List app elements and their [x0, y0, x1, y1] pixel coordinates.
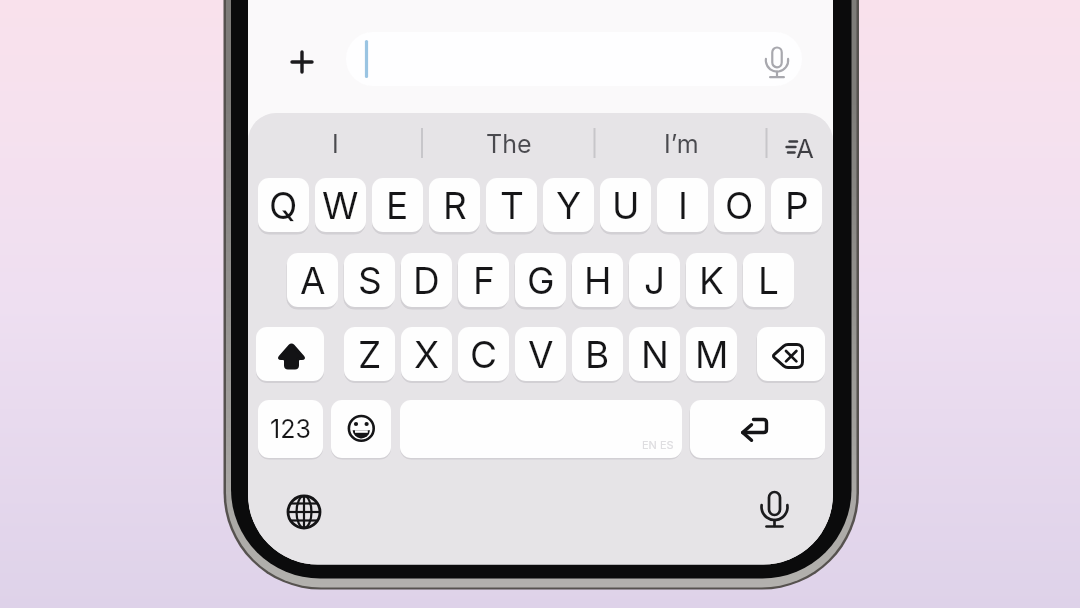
staticText: G [527, 258, 555, 303]
button[interactable]: B [572, 327, 623, 381]
staticText: M [695, 332, 729, 377]
button[interactable]: L [743, 253, 794, 307]
staticText: B [585, 332, 610, 377]
staticText: A [300, 258, 326, 303]
button[interactable] [690, 400, 825, 458]
button[interactable]: S [344, 253, 395, 307]
button[interactable] [278, 38, 326, 86]
staticText: S [358, 258, 382, 303]
button[interactable]: I [248, 113, 422, 175]
button[interactable]: O [714, 178, 765, 232]
staticText: U [612, 183, 640, 228]
staticText: W [322, 183, 359, 228]
button[interactable] [276, 486, 332, 538]
button[interactable]: X [401, 327, 452, 381]
staticText: C [470, 332, 498, 377]
staticText: K [699, 258, 724, 303]
staticText: R [443, 183, 467, 228]
staticText: D [413, 258, 440, 303]
button[interactable] [331, 400, 391, 458]
button[interactable] [346, 32, 802, 86]
button[interactable]: R [429, 178, 480, 232]
button[interactable] [757, 327, 825, 381]
button[interactable]: Q [258, 178, 309, 232]
staticText: I [332, 129, 339, 159]
staticText: O [725, 183, 754, 228]
button[interactable]: Y [543, 178, 594, 232]
button[interactable]: J [629, 253, 680, 307]
staticText: A [796, 133, 814, 161]
button[interactable]: E [372, 178, 423, 232]
staticText: L [758, 258, 779, 303]
staticText: T [500, 183, 524, 228]
staticText: I’m [664, 129, 699, 159]
button[interactable]: The [422, 113, 595, 175]
button[interactable]: T [486, 178, 537, 232]
button[interactable] [747, 486, 803, 538]
button[interactable]: W [315, 178, 366, 232]
button[interactable]: U [600, 178, 651, 232]
button[interactable]: P [771, 178, 822, 232]
staticText: H [584, 258, 612, 303]
button[interactable]: F [458, 253, 509, 307]
button[interactable]: I’m [595, 113, 767, 175]
button[interactable]: A [287, 253, 338, 307]
button[interactable]: C [458, 327, 509, 381]
staticText: The [486, 129, 532, 159]
button[interactable]: G [515, 253, 566, 307]
staticText: P [785, 183, 809, 228]
staticText: J [644, 258, 666, 303]
staticText: V [528, 332, 554, 377]
staticText: EN ES [642, 438, 674, 451]
button[interactable]: N [629, 327, 680, 381]
staticText: Z [358, 332, 382, 377]
staticText: I [678, 183, 688, 228]
staticText: X [414, 332, 440, 377]
button[interactable] [400, 400, 682, 458]
button[interactable]: I [657, 178, 708, 232]
staticText: F [473, 258, 495, 303]
staticText: Y [556, 183, 582, 228]
button[interactable]: V [515, 327, 566, 381]
staticText: E [386, 183, 409, 228]
button[interactable]: Z [344, 327, 395, 381]
button[interactable]: K [686, 253, 737, 307]
staticText: 123 [270, 414, 311, 444]
button[interactable]: H [572, 253, 623, 307]
button[interactable]: D [401, 253, 452, 307]
button[interactable] [767, 113, 833, 175]
button[interactable]: M [686, 327, 737, 381]
staticText: Q [269, 183, 298, 228]
staticText: N [641, 332, 669, 377]
button[interactable]: 123 [258, 400, 323, 458]
button[interactable] [256, 327, 324, 381]
